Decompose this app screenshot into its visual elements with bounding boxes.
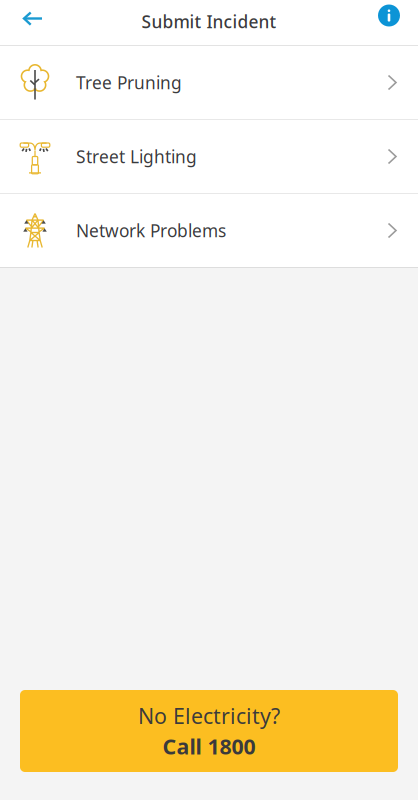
button[interactable]: No Electricity? [20, 690, 398, 772]
staticText: Network Problems [76, 219, 226, 242]
button[interactable]: Information [369, 1, 409, 35]
staticText: Tree Pruning [76, 71, 182, 94]
button[interactable]: Network Problems [0, 194, 418, 267]
staticText: Call 1800 [162, 732, 255, 760]
button[interactable]: Back [12, 1, 54, 35]
staticText: No Electricity? [138, 702, 280, 730]
button[interactable]: Tree Pruning [0, 46, 418, 119]
button[interactable]: Street Lighting [0, 120, 418, 193]
staticText: Street Lighting [76, 145, 197, 168]
staticText: Submit Incident [141, 10, 276, 33]
